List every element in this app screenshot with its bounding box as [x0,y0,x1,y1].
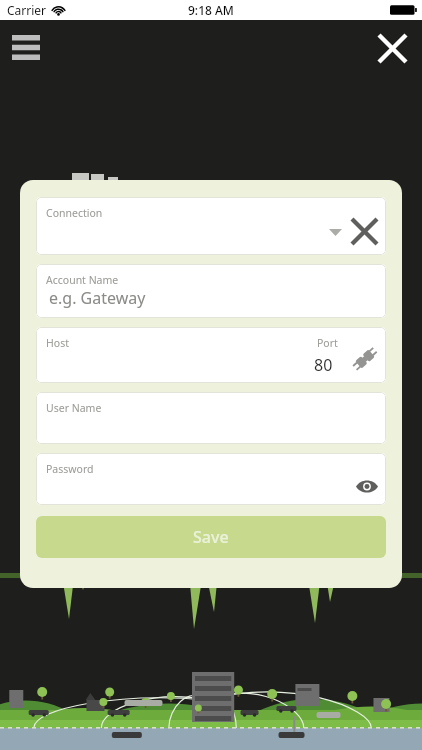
button[interactable]: Menu [4,25,48,69]
staticText: Password [46,462,94,476]
staticText: Connection [46,206,103,220]
staticText: 9:18 AM [188,2,234,18]
staticText: User Name [46,401,102,415]
staticText: Carrier [7,2,47,18]
button[interactable]: Clear connection [342,209,386,253]
button[interactable]: Host [36,327,386,383]
button[interactable]: Password [36,453,386,505]
button[interactable]: Account Name [36,264,386,318]
staticText: Host [46,336,69,350]
button[interactable]: Save [36,516,386,558]
staticText: e.g. Gateway [49,287,146,309]
button[interactable]: Connection [36,197,386,255]
button[interactable]: Close [367,23,417,73]
button[interactable]: User Name [36,392,386,444]
staticText: Account Name [46,273,119,287]
button[interactable]: Show password [348,467,386,505]
button[interactable]: Test connection [344,338,386,380]
staticText: 80 [314,354,333,376]
staticText: Port [317,336,338,350]
staticText: Save [193,526,229,548]
